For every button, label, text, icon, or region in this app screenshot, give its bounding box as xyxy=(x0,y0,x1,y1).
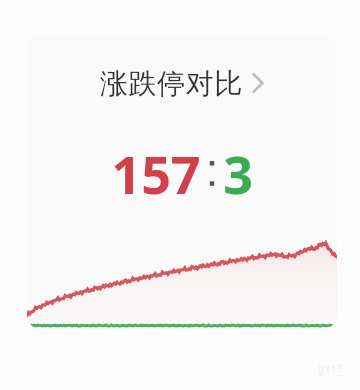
button[interactable]: 涨跌停对比 xyxy=(27,37,337,329)
other: More xyxy=(251,72,265,94)
staticText: 3 xyxy=(223,138,253,209)
staticText: 涨跌停对比 xyxy=(100,66,243,101)
staticText: 157 xyxy=(111,138,201,209)
button[interactable]: 涨跌停对比 xyxy=(27,37,337,129)
staticText: 财经 xyxy=(318,362,344,378)
